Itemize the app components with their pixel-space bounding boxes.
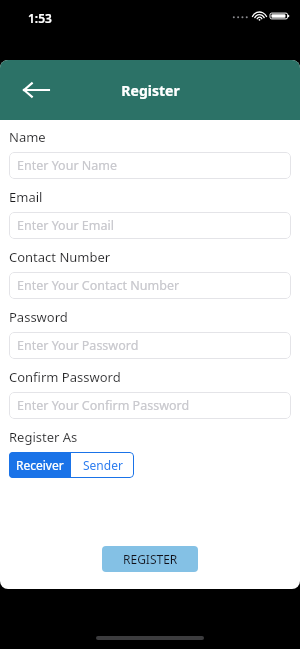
staticText: Enter Your Password <box>17 337 139 354</box>
button[interactable]: Enter Your Contact Number <box>9 272 291 299</box>
staticText: Enter Your Email <box>17 217 114 234</box>
staticText: Enter Your Name <box>17 157 118 174</box>
button[interactable]: Receiver <box>9 452 71 478</box>
staticText: Confirm Password <box>9 368 121 386</box>
button[interactable]: Sender <box>71 452 134 478</box>
button[interactable]: Enter Your Password <box>9 332 291 359</box>
staticText: REGISTER <box>123 551 178 567</box>
staticText: Receiver <box>16 457 64 473</box>
staticText: Enter Your Confirm Password <box>17 397 190 414</box>
staticText: Register <box>121 81 180 100</box>
staticText: Password <box>9 308 68 326</box>
staticText: 1:53 <box>28 10 52 26</box>
staticText: Sender <box>83 457 123 473</box>
button[interactable]: Enter Your Email <box>9 212 291 239</box>
button[interactable]: Back <box>14 68 58 112</box>
button[interactable]: Enter Your Name <box>9 152 291 179</box>
staticText: Email <box>9 188 43 206</box>
staticText: Enter Your Contact Number <box>17 277 180 294</box>
staticText: Contact Number <box>9 248 111 266</box>
button[interactable]: Enter Your Confirm Password <box>9 392 291 419</box>
button[interactable]: REGISTER <box>102 546 198 572</box>
staticText: Register As <box>9 428 78 446</box>
staticText: Name <box>9 128 46 146</box>
